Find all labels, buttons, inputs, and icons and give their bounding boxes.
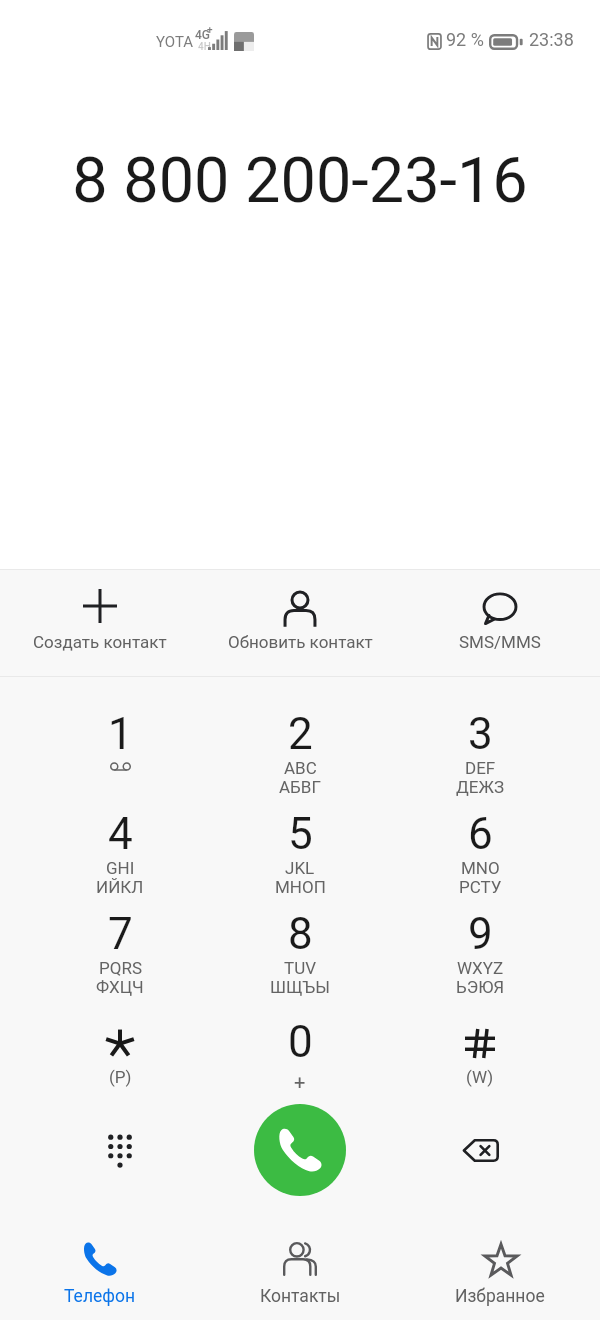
button[interactable]: Избранное (400, 1210, 600, 1320)
staticText: АБВГ (279, 777, 321, 797)
button[interactable]: 4 (30, 792, 210, 892)
staticText: GHI (106, 858, 135, 878)
button[interactable]: 6 (390, 792, 570, 892)
button[interactable]: SMS/MMS (400, 569, 600, 676)
staticText: ЬЭЮЯ (456, 977, 505, 997)
button[interactable]: Call (254, 1104, 346, 1196)
staticText: + (207, 25, 213, 37)
staticText: (P) (109, 1067, 132, 1087)
staticText: SMS/MMS (459, 632, 541, 652)
button[interactable]: Контакты (200, 1210, 400, 1320)
button[interactable]: Hide keypad (85, 1115, 155, 1185)
staticText: + (294, 1070, 306, 1093)
staticText: 0 (288, 1016, 313, 1068)
staticText: МНОП (275, 877, 326, 897)
staticText: 4 (108, 808, 133, 860)
staticText: PQRS (99, 958, 142, 978)
button[interactable]: 3 (390, 692, 570, 792)
staticText: ШЩЪЫ (270, 977, 331, 997)
staticText: 6 (468, 808, 493, 860)
button[interactable]: Обновить контакт (200, 569, 400, 676)
staticText: DEF (465, 758, 496, 778)
staticText: (W) (466, 1067, 494, 1087)
staticText: РСТУ (459, 877, 502, 897)
button[interactable]: 5 (210, 792, 390, 892)
staticText: 8 (288, 908, 313, 960)
staticText: Телефон (64, 1286, 136, 1307)
staticText: JKL (285, 858, 315, 878)
staticText: Избранное (455, 1286, 545, 1307)
button[interactable]: 7 (30, 892, 210, 992)
button[interactable]: Backspace (445, 1115, 515, 1185)
staticText: YOTA (156, 33, 194, 51)
staticText: 4G (195, 28, 210, 42)
staticText: 8 800 200-23-16 (0, 144, 600, 218)
button[interactable]: 2 (210, 692, 390, 792)
staticText: 5 (288, 808, 313, 860)
button[interactable]: (P) (30, 1016, 210, 1116)
staticText: 4H (198, 41, 211, 53)
button[interactable]: Телефон (0, 1210, 200, 1320)
staticText: Контакты (260, 1286, 341, 1307)
button[interactable]: (W) (390, 1016, 570, 1116)
staticText: 7 (108, 908, 133, 960)
staticText: 2 (288, 708, 313, 760)
staticText: TUV (284, 958, 316, 978)
button[interactable]: 8 (210, 892, 390, 992)
staticText: ИЙКЛ (96, 877, 144, 897)
staticText: Создать контакт (33, 632, 167, 652)
staticText: ABC (284, 758, 317, 778)
button[interactable]: 1 (30, 692, 210, 792)
staticText: ФХЦЧ (96, 977, 144, 997)
staticText: 3 (468, 708, 493, 760)
staticText: WXYZ (457, 958, 504, 978)
staticText: 9 (468, 908, 493, 960)
button[interactable]: 9 (390, 892, 570, 992)
button[interactable]: 0 (210, 1016, 390, 1116)
button[interactable]: Создать контакт (0, 569, 200, 676)
staticText: ДЕЖЗ (456, 777, 504, 797)
staticText: 1 (108, 708, 133, 760)
staticText: MNO (461, 858, 500, 878)
staticText: Обновить контакт (228, 632, 373, 652)
staticText: 92 % (446, 29, 484, 50)
staticText: 23:38 (529, 29, 574, 50)
